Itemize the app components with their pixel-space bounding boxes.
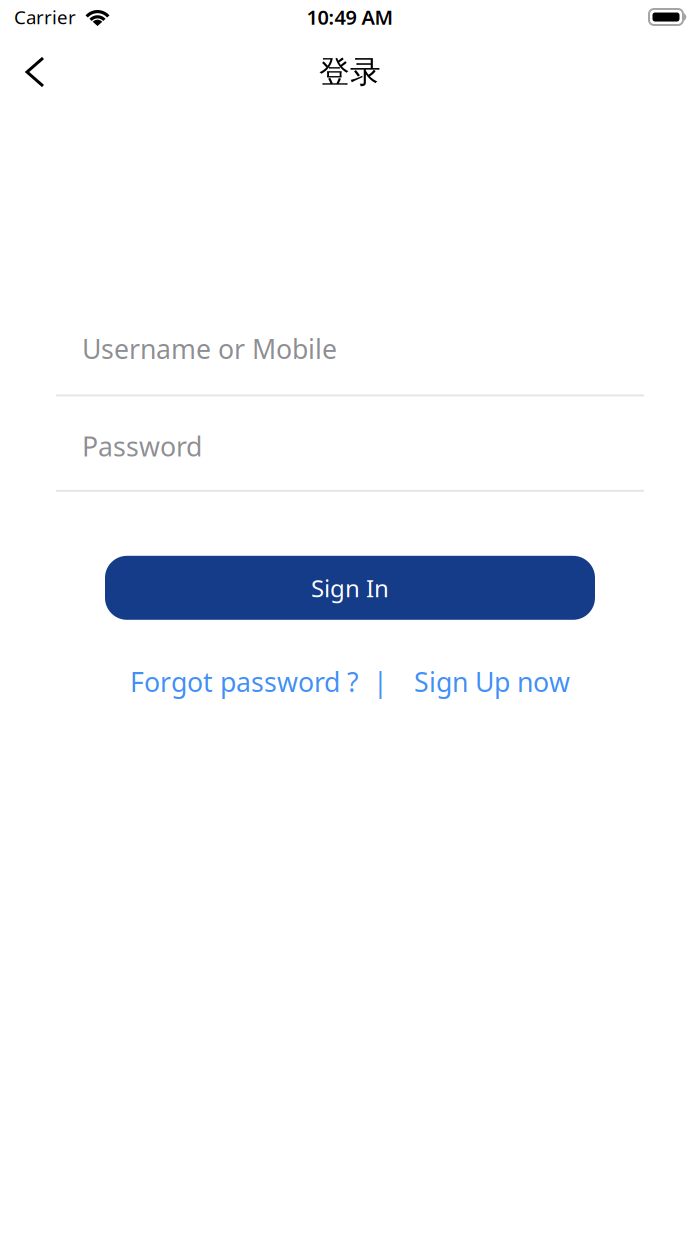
staticText: Forgot password ? [130,664,359,699]
staticText: Sign Up now [414,664,570,699]
staticText: Sign In [311,572,389,604]
staticText: | [373,664,388,699]
staticText: Password [82,428,202,464]
staticText: Username or Mobile [82,331,337,366]
staticText: Carrier [14,5,76,29]
button[interactable]: Sign In [105,556,595,620]
staticText: 10:49 AM [306,4,393,30]
button[interactable]: Back [0,46,63,98]
staticText: 登录 [319,53,381,91]
button[interactable]: Sign Up now [414,664,570,699]
button[interactable]: Forgot password ? [130,664,359,699]
